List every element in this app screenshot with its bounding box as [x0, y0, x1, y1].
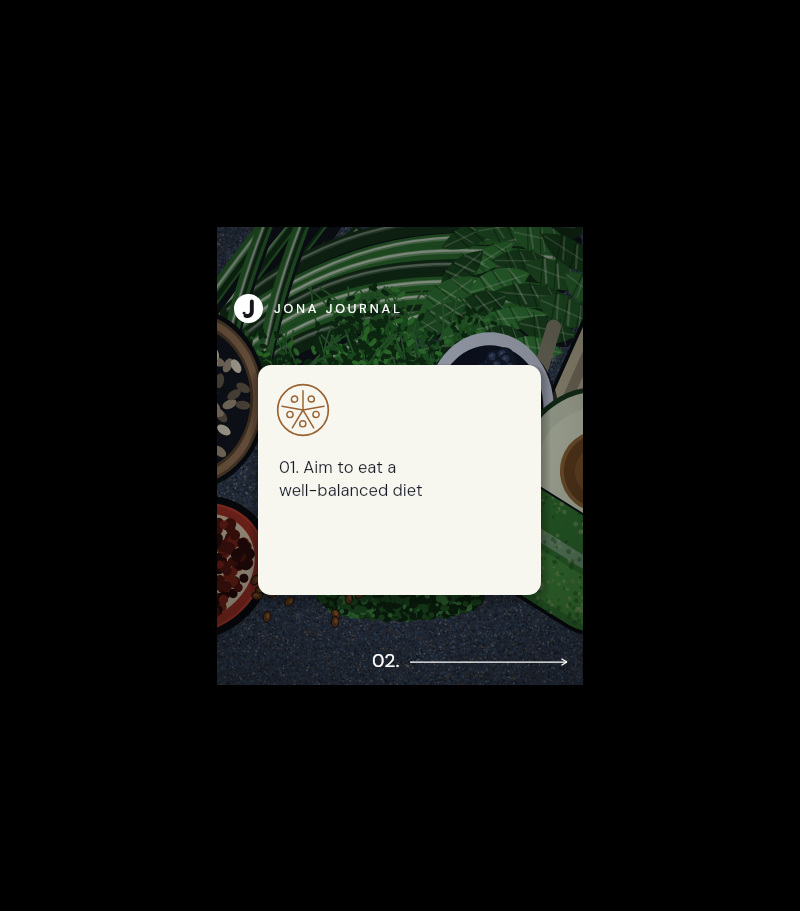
- button[interactable]: Jona Journal logo: [234, 294, 403, 323]
- staticText: JONA JOURNAL: [274, 300, 403, 317]
- other: Next tip: [410, 655, 567, 667]
- other: Jona Journal logo: [234, 294, 263, 323]
- button[interactable]: 02.: [372, 648, 567, 673]
- button[interactable]: Nutrition badge: [258, 365, 541, 595]
- staticText: 02.: [372, 648, 400, 673]
- staticText: 01. Aim to eat a well-balanced diet: [279, 457, 423, 501]
- other: Nutrition badge: [276, 383, 330, 437]
